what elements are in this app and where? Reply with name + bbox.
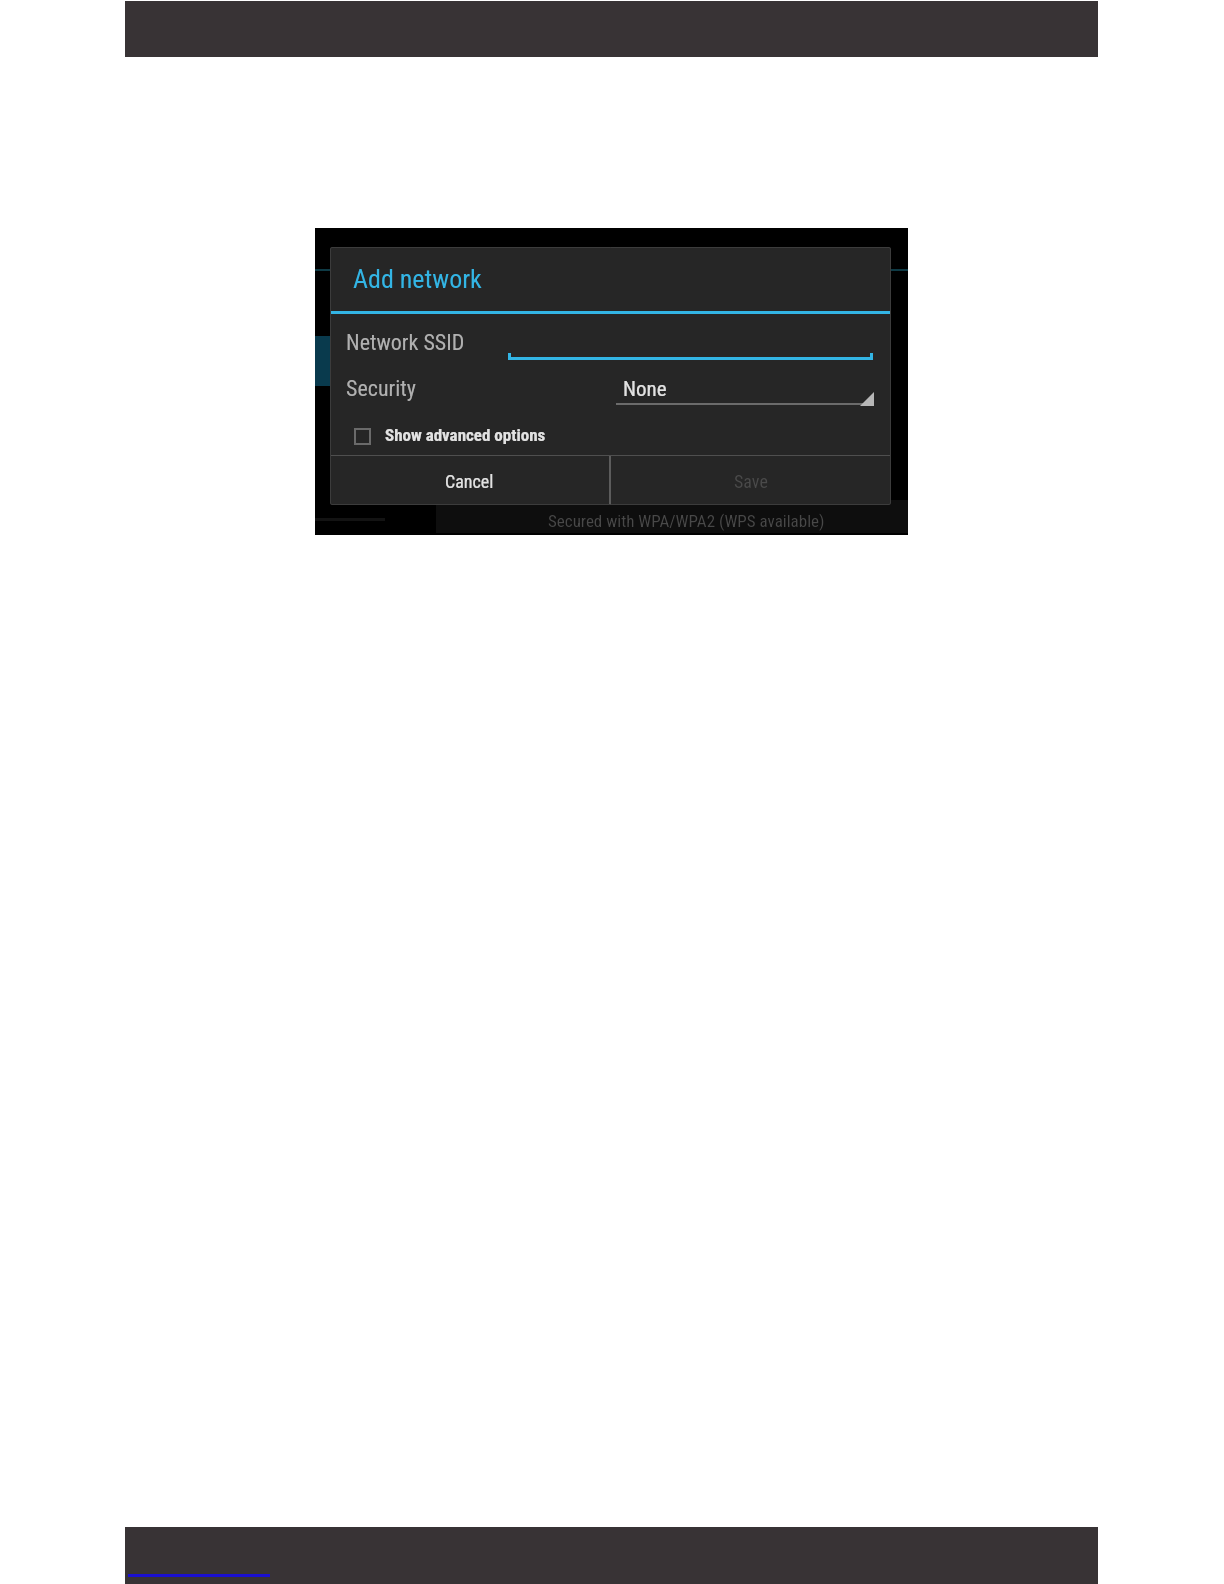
button[interactable]: None bbox=[616, 371, 873, 408]
button[interactable]: Show advanced options bbox=[350, 417, 570, 455]
staticText: Security bbox=[346, 376, 416, 402]
staticText: Show advanced options bbox=[385, 425, 546, 445]
staticText: Cancel bbox=[445, 471, 494, 492]
button[interactable]: Save bbox=[611, 457, 891, 505]
staticText: Add network bbox=[353, 264, 482, 294]
staticText: Network SSID bbox=[346, 330, 465, 356]
button[interactable]: Cancel bbox=[330, 457, 609, 505]
staticText: None bbox=[623, 377, 667, 402]
staticText: Save bbox=[734, 471, 768, 492]
staticText: Secured with WPA/WPA2 (WPS available) bbox=[548, 511, 825, 531]
button[interactable]: Open link bbox=[128, 1567, 270, 1581]
